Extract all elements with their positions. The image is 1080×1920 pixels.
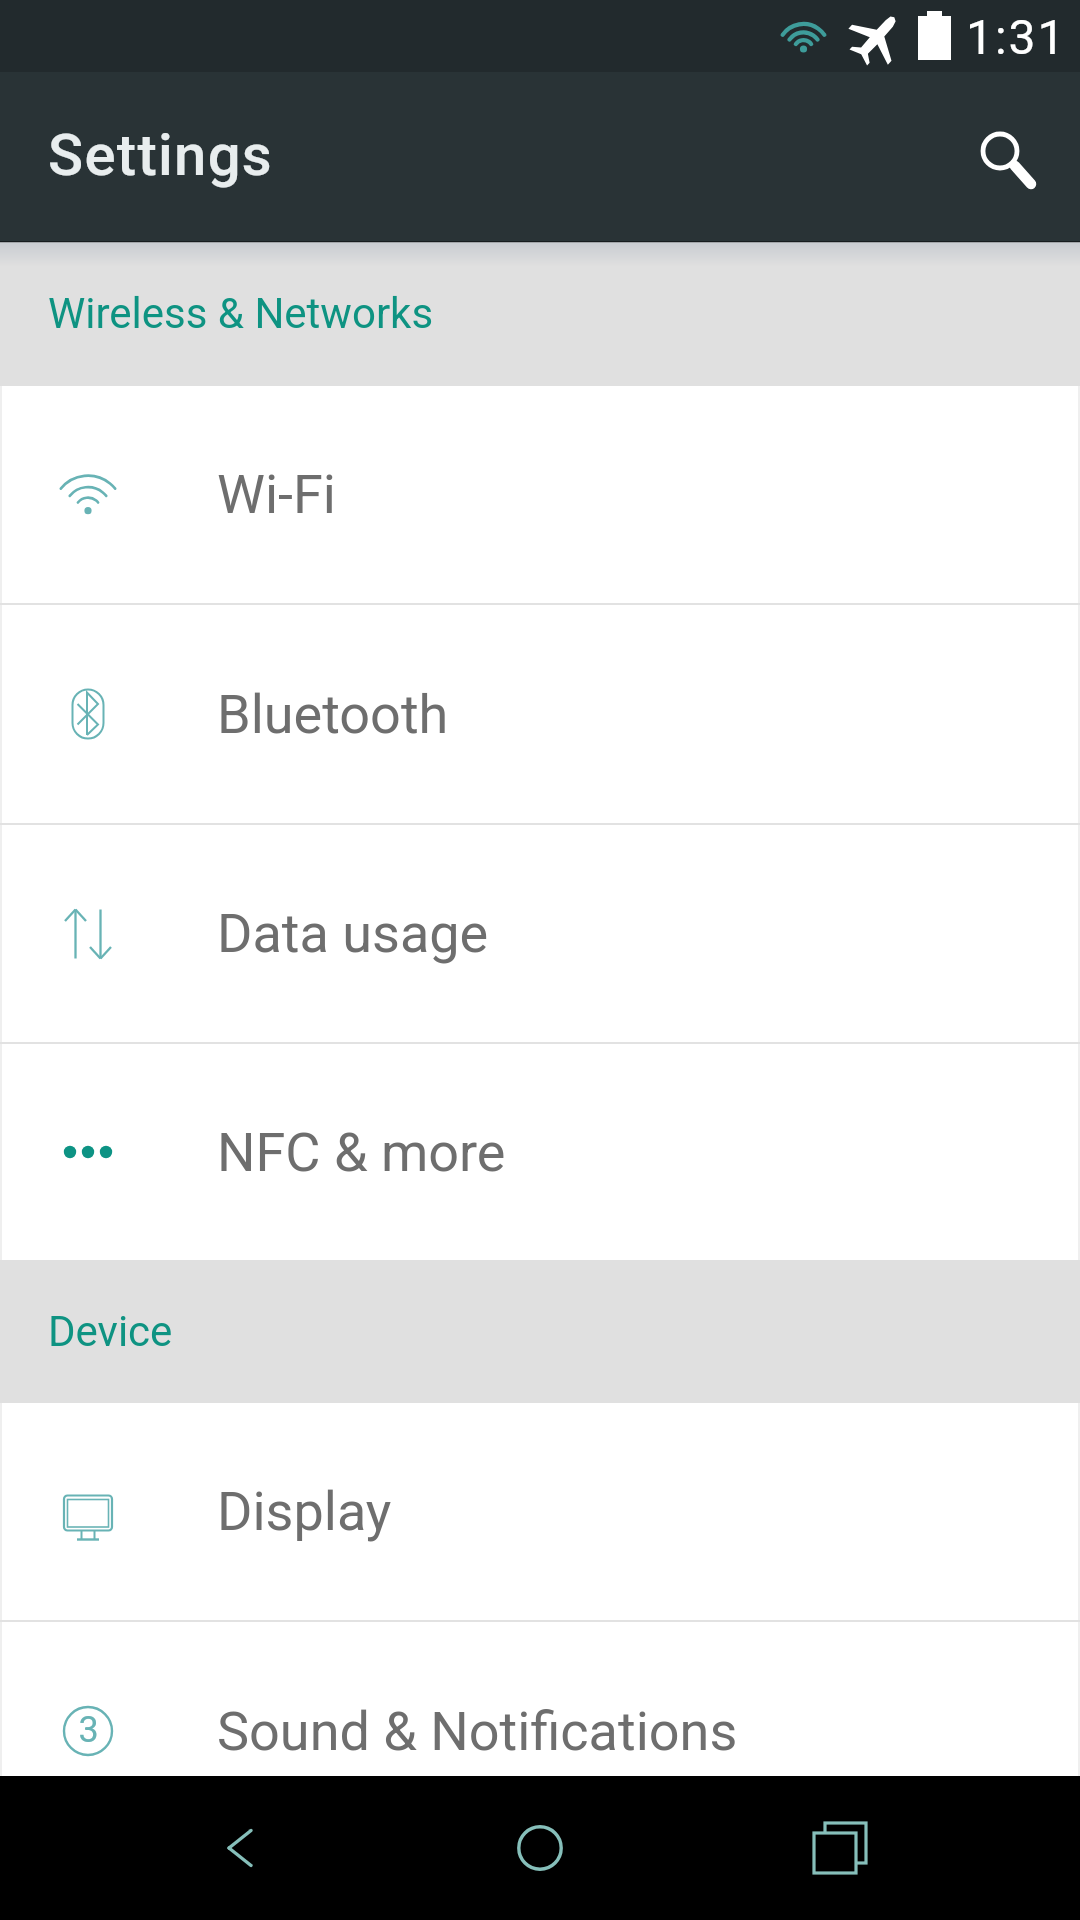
- staticText: Device: [48, 1307, 173, 1356]
- staticText: 1:31: [966, 9, 1067, 65]
- staticText: Display: [217, 1480, 392, 1543]
- staticText: Settings: [48, 121, 274, 189]
- button[interactable]: Data usage: [0, 825, 1080, 1042]
- button[interactable]: Back: [150, 1776, 330, 1920]
- button[interactable]: NFC & more: [0, 1044, 1080, 1260]
- staticText: 3: [78, 1709, 99, 1751]
- button[interactable]: Display: [0, 1403, 1080, 1620]
- staticText: Wi-Fi: [217, 463, 336, 526]
- button[interactable]: 3: [0, 1622, 1080, 1776]
- staticText: Data usage: [217, 902, 489, 965]
- staticText: NFC & more: [217, 1121, 506, 1184]
- staticText: Wireless & Networks: [48, 289, 434, 338]
- button[interactable]: Wi-Fi: [0, 386, 1080, 603]
- button[interactable]: Bluetooth: [0, 605, 1080, 823]
- button[interactable]: Search: [940, 91, 1060, 211]
- button[interactable]: Recent apps: [750, 1776, 930, 1920]
- staticText: Sound & Notifications: [217, 1700, 738, 1763]
- staticText: Bluetooth: [217, 683, 449, 746]
- button[interactable]: Home: [450, 1776, 630, 1920]
